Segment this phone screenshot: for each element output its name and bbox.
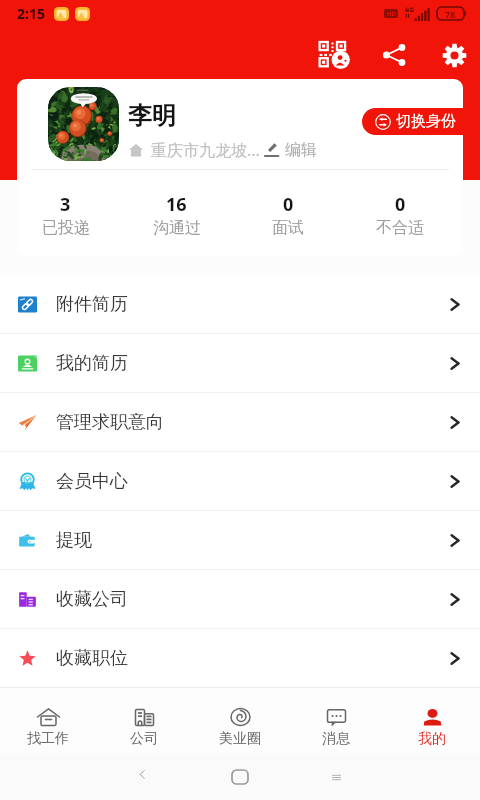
staticText: 我的简历 — [56, 352, 128, 375]
staticText: 78 — [445, 8, 456, 20]
button[interactable]: 收藏职位 — [0, 629, 480, 687]
button[interactable]: Settings — [433, 34, 475, 76]
button[interactable]: 找工作 — [0, 688, 96, 753]
staticText: 提现 — [56, 529, 92, 552]
button[interactable]: 美业圈 — [192, 688, 288, 753]
button[interactable]: Share — [373, 34, 415, 76]
staticText: 管理求职意向 — [56, 411, 164, 434]
button[interactable]: 切换身份 — [362, 108, 480, 135]
staticText: 16 — [166, 192, 187, 217]
button[interactable]: 16 — [121, 170, 232, 256]
button[interactable]: My QR code — [313, 34, 355, 76]
staticText: 面试 — [272, 218, 304, 238]
staticText: 找工作 — [27, 730, 69, 748]
button[interactable]: 公司 — [96, 688, 192, 753]
button[interactable]: 3 — [17, 170, 121, 256]
button[interactable]: 0 — [344, 170, 456, 256]
button[interactable]: Home — [220, 757, 260, 797]
staticText: 0 — [283, 192, 294, 217]
button[interactable]: 消息 — [288, 688, 384, 753]
staticText: 切换身份 — [396, 112, 456, 131]
staticText: 美业圈 — [219, 730, 261, 748]
staticText: HD — [387, 10, 396, 18]
staticText: 我的 — [418, 730, 446, 748]
button[interactable]: Avatar — [48, 87, 119, 161]
staticText: 编辑 — [285, 140, 317, 160]
staticText: 公司 — [130, 730, 158, 748]
staticText: 0 — [395, 192, 406, 217]
staticText: 收藏职位 — [56, 647, 128, 670]
staticText: 李明 — [128, 101, 176, 131]
staticText: 2:15 — [17, 4, 45, 23]
staticText: 3 — [60, 192, 71, 217]
button[interactable]: Back — [122, 757, 162, 797]
staticText: 会员中心 — [56, 470, 128, 493]
button[interactable]: 收藏公司 — [0, 570, 480, 628]
button[interactable]: 我的简历 — [0, 334, 480, 392]
button[interactable]: 我的 — [384, 688, 480, 753]
button[interactable]: 管理求职意向 — [0, 393, 480, 451]
button[interactable]: 会员中心 — [0, 452, 480, 510]
staticText: 重庆市九龙坡... — [151, 139, 260, 161]
staticText: 附件简历 — [56, 293, 128, 316]
button[interactable]: Recent apps — [318, 757, 358, 797]
staticText: 收藏公司 — [56, 588, 128, 611]
staticText: 沟通过 — [153, 218, 201, 238]
button[interactable]: 提现 — [0, 511, 480, 569]
button[interactable]: 附件简历 — [0, 275, 480, 333]
button[interactable]: 0 — [232, 170, 344, 256]
staticText: 消息 — [322, 730, 350, 748]
staticText: 已投递 — [42, 218, 90, 238]
staticText: 不合适 — [376, 218, 424, 238]
